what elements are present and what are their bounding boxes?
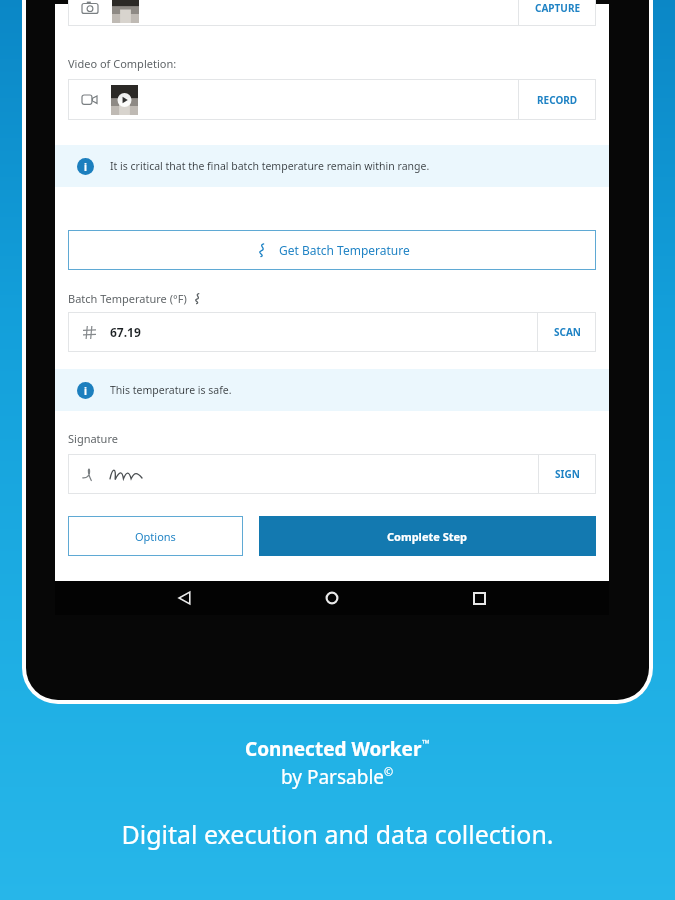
staticText: Batch Temperature (°F) [68, 291, 187, 306]
staticText: This temperature is safe. [110, 383, 232, 397]
other: Signature [82, 467, 97, 482]
staticText: i [84, 384, 87, 398]
staticText: Digital execution and data collection. [121, 817, 554, 851]
button[interactable]: Camera [68, 0, 596, 26]
staticText: Connected Worker [245, 736, 422, 762]
other: Video [82, 92, 97, 107]
button[interactable]: Home [315, 581, 349, 615]
button[interactable]: Recents [462, 581, 496, 615]
staticText: Get Batch Temperature [279, 242, 410, 258]
button[interactable]: Complete Step [259, 516, 596, 556]
staticText: RECORD [537, 93, 578, 107]
button[interactable]: SIGN [539, 454, 596, 494]
button[interactable]: RECORD [519, 79, 596, 120]
other: Camera [82, 0, 98, 16]
button[interactable]: Options [68, 516, 243, 556]
staticText: © [384, 764, 394, 779]
staticText: It is critical that the final batch temp… [110, 159, 430, 173]
staticText: 67.19 [110, 324, 141, 340]
button[interactable]: Signature [68, 454, 596, 494]
button[interactable]: 67.19 [68, 312, 596, 352]
staticText: by Parsable [281, 764, 384, 790]
staticText: Video of Completion: [68, 56, 177, 71]
button[interactable]: SCAN [538, 312, 596, 352]
staticText: ™ [422, 736, 430, 750]
staticText: Signature [68, 431, 118, 446]
button[interactable]: CAPTURE [519, 0, 596, 26]
staticText: i [84, 160, 87, 174]
staticText: CAPTURE [535, 1, 581, 15]
button[interactable]: Get Batch Temperature [68, 230, 596, 270]
staticText: Complete Step [387, 529, 468, 544]
button[interactable]: Back [168, 581, 202, 615]
staticText: SCAN [554, 325, 581, 339]
staticText: SIGN [555, 467, 580, 481]
button[interactable]: Video [68, 79, 596, 120]
staticText: Options [135, 529, 176, 544]
